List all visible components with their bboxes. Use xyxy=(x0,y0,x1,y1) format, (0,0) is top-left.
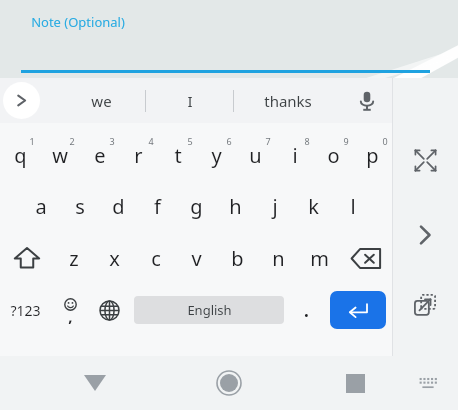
button[interactable]: Collapse panel xyxy=(403,213,447,257)
staticText: 3 xyxy=(109,135,115,147)
staticText: s xyxy=(75,193,85,220)
staticText: b xyxy=(231,245,244,272)
staticText: z xyxy=(69,245,79,272)
staticText: t xyxy=(174,142,182,169)
staticText: 8 xyxy=(304,135,310,147)
staticText: 1 xyxy=(29,135,35,147)
button[interactable]: h xyxy=(216,180,255,232)
button[interactable]: Resize xyxy=(403,138,447,182)
staticText: q xyxy=(14,142,27,169)
staticText: v xyxy=(191,245,202,272)
button[interactable]: Voice input xyxy=(342,78,392,123)
staticText: c xyxy=(151,245,161,272)
staticText: 5 xyxy=(187,135,193,147)
button[interactable]: p xyxy=(353,123,392,180)
staticText: h xyxy=(229,193,242,220)
button[interactable]: . xyxy=(288,284,324,336)
staticText: k xyxy=(308,193,319,220)
button[interactable]: w xyxy=(40,123,80,180)
button[interactable]: thanks xyxy=(234,78,342,123)
button[interactable]: e xyxy=(80,123,119,180)
button[interactable]: c xyxy=(135,232,176,284)
button[interactable]: English xyxy=(134,296,284,324)
staticText: 7 xyxy=(265,135,271,147)
staticText: u xyxy=(249,142,262,169)
staticText: r xyxy=(134,142,143,169)
staticText: m xyxy=(310,245,329,272)
staticText: . xyxy=(304,299,309,322)
staticText: d xyxy=(112,193,125,220)
button[interactable]: b xyxy=(217,232,258,284)
staticText: we xyxy=(91,91,112,111)
staticText: g xyxy=(190,193,203,220)
button[interactable]: v xyxy=(176,232,217,284)
staticText: n xyxy=(272,245,285,272)
button[interactable]: z xyxy=(53,232,94,284)
staticText: 4 xyxy=(148,135,154,147)
button[interactable]: Shift xyxy=(0,232,53,284)
staticText: f xyxy=(154,193,161,220)
button[interactable]: s xyxy=(60,180,99,232)
button[interactable]: Hide keyboard xyxy=(68,356,122,410)
staticText: thanks xyxy=(264,91,312,111)
button[interactable]: Home xyxy=(202,356,256,410)
button[interactable]: k xyxy=(294,180,333,232)
button[interactable]: q xyxy=(0,123,40,180)
staticText: 6 xyxy=(226,135,232,147)
button[interactable]: a xyxy=(21,180,60,232)
staticText: 0 xyxy=(382,135,388,147)
button[interactable]: f xyxy=(138,180,177,232)
button[interactable]: r xyxy=(119,123,158,180)
button[interactable]: y xyxy=(197,123,236,180)
staticText: p xyxy=(366,142,379,169)
button[interactable]: m xyxy=(299,232,340,284)
button[interactable]: Move to window xyxy=(403,283,447,327)
button[interactable]: Backspace xyxy=(340,232,392,284)
button[interactable]: l xyxy=(333,180,372,232)
staticText: w xyxy=(52,142,68,169)
staticText: y xyxy=(211,142,222,169)
button[interactable]: Keyboard active xyxy=(406,361,450,405)
button[interactable]: Emoji and comma xyxy=(51,284,89,336)
staticText: i xyxy=(292,142,298,169)
button[interactable]: Recent apps xyxy=(328,356,382,410)
staticText: a xyxy=(35,193,47,220)
staticText: , xyxy=(68,306,73,326)
staticText: l xyxy=(350,193,356,220)
button[interactable]: n xyxy=(258,232,299,284)
button[interactable]: I xyxy=(146,78,233,123)
staticText: o xyxy=(327,142,340,169)
button[interactable]: ?123 xyxy=(0,284,51,336)
button[interactable]: u xyxy=(236,123,275,180)
staticText: 9 xyxy=(343,135,349,147)
staticText: 2 xyxy=(69,135,75,147)
button[interactable]: g xyxy=(177,180,216,232)
button[interactable]: we xyxy=(58,78,145,123)
button[interactable]: d xyxy=(99,180,138,232)
button[interactable]: o xyxy=(314,123,353,180)
staticText: I xyxy=(187,91,193,111)
button[interactable]: Show more suggestions xyxy=(3,82,40,119)
button[interactable]: t xyxy=(158,123,197,180)
button[interactable]: x xyxy=(94,232,135,284)
button[interactable]: j xyxy=(255,180,294,232)
staticText: ?123 xyxy=(10,301,41,320)
staticText: Note (Optional) xyxy=(31,13,125,31)
staticText: e xyxy=(94,142,106,169)
button[interactable]: i xyxy=(275,123,314,180)
button[interactable]: Change keyboard language xyxy=(89,284,130,336)
button[interactable]: Enter xyxy=(330,291,386,329)
staticText: j xyxy=(272,193,278,220)
staticText: English xyxy=(187,301,232,319)
staticText: x xyxy=(109,245,120,272)
